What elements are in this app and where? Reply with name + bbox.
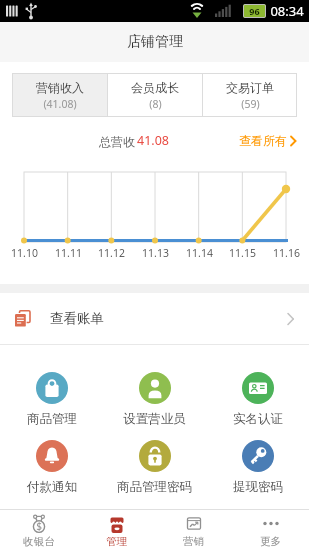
- staticText: 提现密码: [233, 479, 283, 495]
- staticText: 11.12: [98, 246, 125, 260]
- button[interactable]: 商品管理: [0, 372, 103, 427]
- button[interactable]: 查看账单: [0, 293, 309, 344]
- staticText: 实名认证: [233, 411, 283, 427]
- staticText: 商品管理: [27, 411, 77, 427]
- staticText: 店铺管理: [127, 33, 183, 51]
- staticText: (59): [241, 97, 260, 111]
- staticText: 41.08: [137, 132, 169, 149]
- staticText: 营销: [183, 535, 204, 548]
- staticText: 11.11: [55, 246, 82, 260]
- staticText: 收银台: [23, 535, 55, 548]
- staticText: 查看账单: [50, 310, 104, 327]
- button[interactable]: $: [0, 510, 78, 550]
- staticText: 商品管理密码: [117, 479, 192, 495]
- staticText: 设置营业员: [123, 411, 186, 427]
- staticText: 查看所有: [239, 133, 287, 148]
- button[interactable]: 更多: [232, 510, 309, 550]
- staticText: 会员成长: [131, 80, 179, 95]
- staticText: 11.10: [11, 246, 38, 260]
- staticText: 管理: [106, 535, 127, 548]
- staticText: 交易订单: [226, 80, 274, 95]
- button[interactable]: 商品管理密码: [103, 440, 206, 495]
- staticText: (41.08): [43, 97, 77, 111]
- staticText: $: [36, 519, 42, 533]
- staticText: 更多: [260, 535, 281, 548]
- button[interactable]: 付款通知: [0, 440, 103, 495]
- button[interactable]: 营销收入: [12, 73, 107, 117]
- button[interactable]: 会员成长: [108, 73, 202, 117]
- staticText: 11.14: [186, 246, 213, 260]
- button[interactable]: 查看所有: [239, 133, 297, 148]
- button[interactable]: 交易订单: [203, 73, 297, 117]
- staticText: 11.13: [142, 246, 169, 260]
- staticText: 付款通知: [27, 479, 77, 495]
- button[interactable]: 实名认证: [206, 372, 309, 427]
- staticText: 11.15: [229, 246, 256, 260]
- staticText: 96: [249, 5, 260, 17]
- staticText: 总营收: [97, 133, 137, 149]
- staticText: 08:34: [270, 2, 304, 20]
- button[interactable]: 提现密码: [206, 440, 309, 495]
- staticText: 11.16: [273, 246, 300, 260]
- button[interactable]: 营销: [155, 510, 232, 550]
- button[interactable]: 管理: [78, 510, 155, 550]
- staticText: 营销收入: [36, 80, 84, 95]
- button[interactable]: 设置营业员: [103, 372, 206, 427]
- staticText: (8): [149, 97, 162, 111]
